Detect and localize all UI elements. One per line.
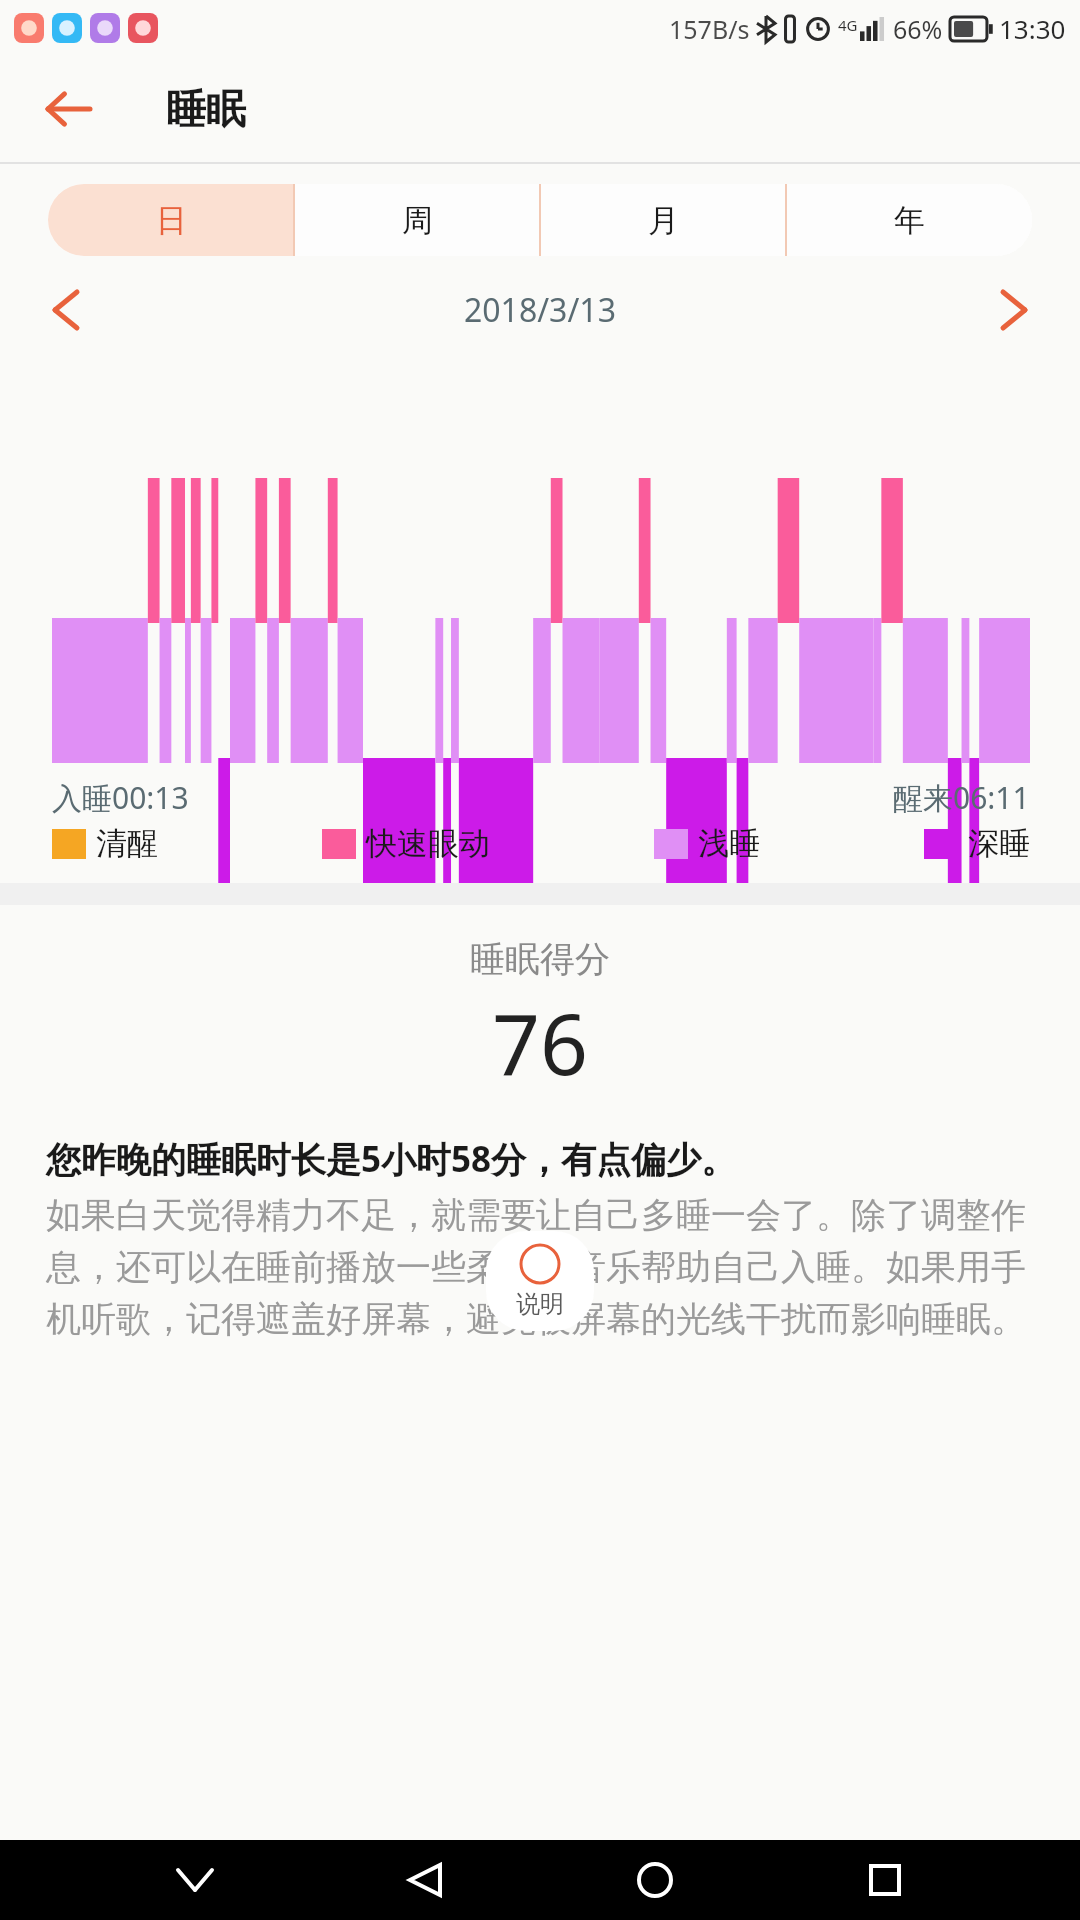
- staticText: 如果白天觉得精力不足，就需要让自己多睡一会了。除了调整作息，还可以在睡前播放一些…: [46, 1193, 1038, 1341]
- staticText: 157B/s: [669, 12, 750, 46]
- staticText: 醒来06:11: [893, 777, 1030, 818]
- staticText: 清醒: [96, 824, 158, 863]
- staticText: 年: [894, 201, 925, 240]
- staticText: 深睡: [968, 824, 1030, 863]
- button[interactable]: Previous day: [34, 278, 98, 342]
- staticText: 睡眠: [166, 84, 246, 134]
- staticText: 2018/3/13: [464, 288, 616, 332]
- button[interactable]: 月: [540, 184, 786, 256]
- button[interactable]: Home: [620, 1845, 690, 1915]
- button[interactable]: Recents: [850, 1845, 920, 1915]
- staticText: 入睡00:13: [52, 777, 189, 818]
- button[interactable]: 周: [294, 184, 540, 256]
- staticText: 睡眠得分: [470, 937, 610, 981]
- button[interactable]: 日: [48, 184, 294, 256]
- staticText: 13:30: [999, 11, 1066, 46]
- staticText: 4G: [838, 15, 858, 35]
- staticText: 日: [156, 201, 187, 240]
- button[interactable]: Hide: [160, 1845, 230, 1915]
- staticText: 浅睡: [698, 824, 760, 863]
- staticText: 76: [492, 985, 589, 1099]
- staticText: 您昨晚的睡眠时长是5小时58分，有点偏少。: [46, 1135, 737, 1183]
- button[interactable]: Next day: [982, 278, 1046, 342]
- button[interactable]: Back: [40, 81, 96, 137]
- staticText: 月: [648, 201, 679, 240]
- staticText: 周: [402, 201, 433, 240]
- staticText: 66%: [893, 12, 943, 46]
- staticText: 说明: [516, 1289, 564, 1319]
- staticText: 快速眼动: [366, 824, 490, 863]
- button[interactable]: Back: [390, 1845, 460, 1915]
- button[interactable]: 年: [786, 184, 1032, 256]
- button[interactable]: 说明: [516, 1243, 564, 1319]
